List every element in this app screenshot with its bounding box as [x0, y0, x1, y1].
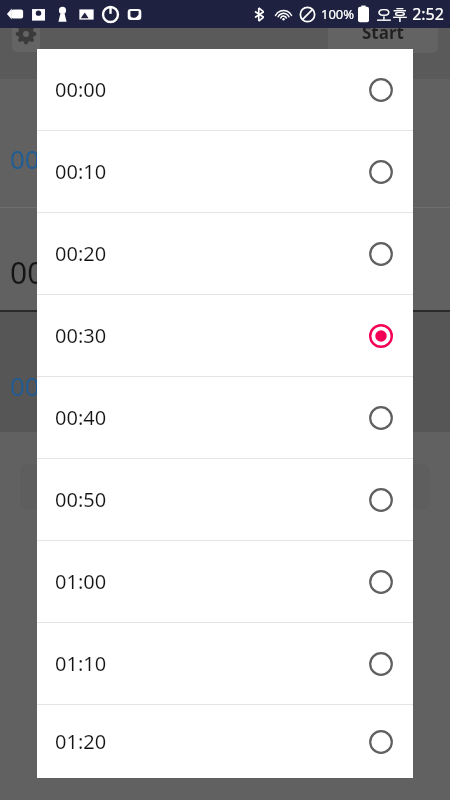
staticText: 00:40 — [55, 404, 107, 431]
button[interactable]: 01:20 — [37, 705, 413, 778]
staticText: 01:20 — [55, 728, 107, 755]
button[interactable]: 00:50 — [37, 459, 413, 540]
staticText: 00:20 — [55, 240, 107, 267]
staticText: 00:50 — [55, 486, 107, 513]
staticText: 00:00 — [10, 368, 77, 403]
staticText: 00:30 — [55, 322, 107, 349]
staticText: Start — [362, 21, 404, 44]
button[interactable]: 01:00 — [37, 541, 413, 622]
staticText: 00:00 — [55, 76, 107, 103]
button[interactable]: 00:20 — [37, 213, 413, 294]
staticText: 오후 2:52 — [376, 3, 444, 25]
button[interactable]: Settings — [12, 15, 40, 52]
staticText: 00:00 — [10, 252, 87, 293]
staticText: 100% — [321, 5, 355, 23]
staticText: 01:10 — [55, 650, 107, 677]
button[interactable]: Start — [328, 11, 438, 53]
button[interactable]: 01:10 — [37, 623, 413, 704]
button[interactable]: 00:40 — [37, 377, 413, 458]
button[interactable]: 00:00 — [37, 49, 413, 130]
staticText: 00:10 — [55, 158, 107, 185]
staticText: 01:00 — [55, 568, 107, 595]
staticText: 00:00 — [10, 141, 77, 176]
button[interactable]: 00:30 — [37, 295, 413, 376]
button[interactable]: 00:10 — [37, 131, 413, 212]
